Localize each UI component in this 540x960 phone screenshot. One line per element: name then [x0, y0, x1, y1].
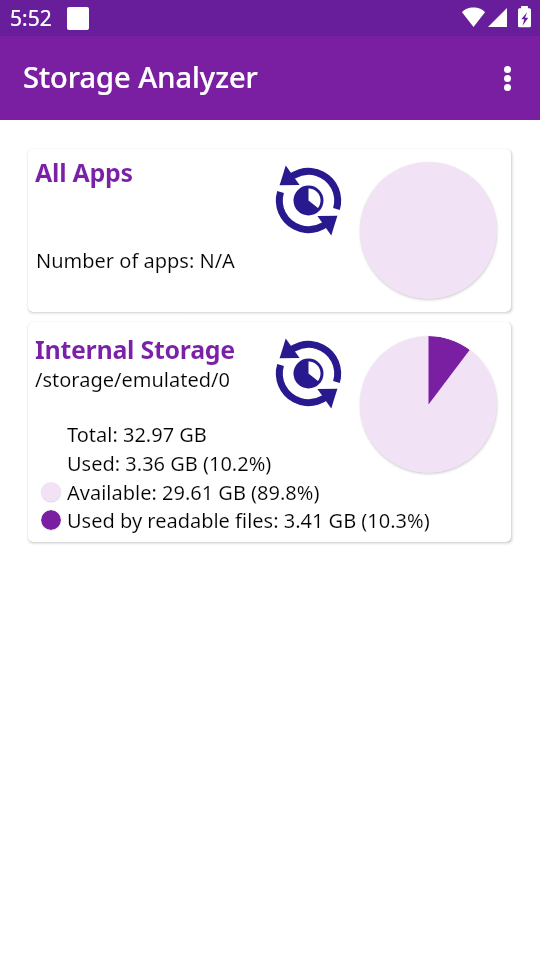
- button[interactable]: All Apps: [28, 149, 511, 312]
- staticText: All Apps: [35, 155, 133, 189]
- button[interactable]: Refresh storage statistics: [273, 165, 344, 236]
- staticText: Total: 32.97 GB: [67, 421, 207, 448]
- staticText: Internal Storage: [35, 332, 235, 366]
- staticText: 5:52: [10, 4, 52, 33]
- button[interactable]: Refresh storage statistics: [273, 338, 344, 409]
- button[interactable]: More options: [481, 52, 533, 104]
- staticText: Number of apps: N/A: [36, 247, 235, 274]
- staticText: Used: 3.36 GB (10.2%): [67, 450, 272, 477]
- staticText: Used by readable files: 3.41 GB (10.3%): [67, 507, 430, 534]
- staticText: Available: 29.61 GB (89.8%): [67, 479, 320, 506]
- staticText: /storage/emulated/0: [35, 366, 230, 393]
- button[interactable]: Internal Storage: [28, 322, 511, 542]
- staticText: Storage Analyzer: [23, 57, 258, 96]
